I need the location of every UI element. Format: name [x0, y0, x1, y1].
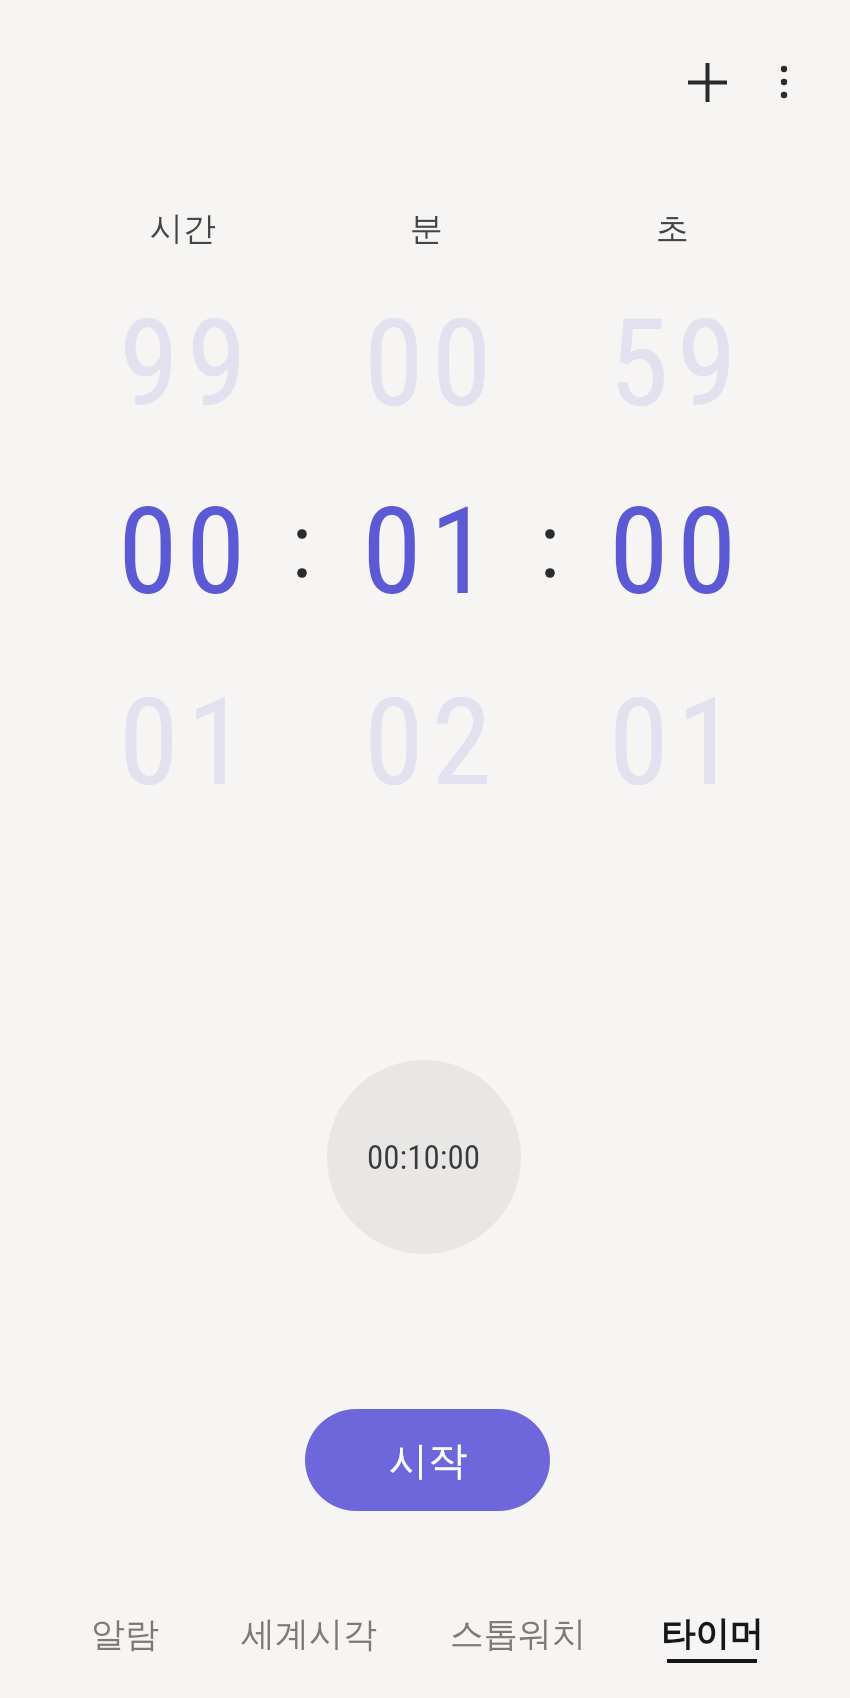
staticText: 00	[364, 293, 500, 435]
button[interactable]: 00	[507, 447, 847, 657]
staticText: 시작	[389, 1436, 467, 1485]
staticText: 초	[656, 208, 689, 250]
staticText: 분	[410, 208, 443, 250]
button[interactable]: 알람	[25, 1589, 225, 1679]
staticText: 00	[609, 481, 745, 623]
staticText: 스톱워치	[450, 1613, 586, 1656]
button[interactable]	[679, 54, 736, 111]
staticText: 타이머	[661, 1613, 763, 1656]
staticText: 00:10:00	[367, 1138, 481, 1177]
staticText: 59	[609, 293, 745, 435]
staticText: 01	[119, 672, 255, 814]
staticText: 01	[362, 481, 498, 623]
button[interactable]: 스톱워치	[418, 1589, 618, 1679]
button[interactable]: 00	[16, 447, 356, 657]
button[interactable]: 01	[260, 447, 600, 657]
staticText: 00	[118, 481, 254, 623]
button[interactable]: 세계시각	[209, 1589, 409, 1679]
staticText: 02	[364, 672, 500, 814]
staticText: 알람	[91, 1613, 159, 1656]
staticText: 세계시각	[241, 1613, 377, 1656]
button[interactable]: 00:10:00	[327, 1060, 521, 1254]
button[interactable]	[756, 54, 812, 110]
staticText: 시간	[150, 208, 216, 250]
button[interactable]: 타이머	[612, 1589, 812, 1679]
button[interactable]: 시작	[305, 1409, 550, 1511]
staticText: 01	[609, 672, 745, 814]
staticText: 99	[119, 293, 255, 435]
